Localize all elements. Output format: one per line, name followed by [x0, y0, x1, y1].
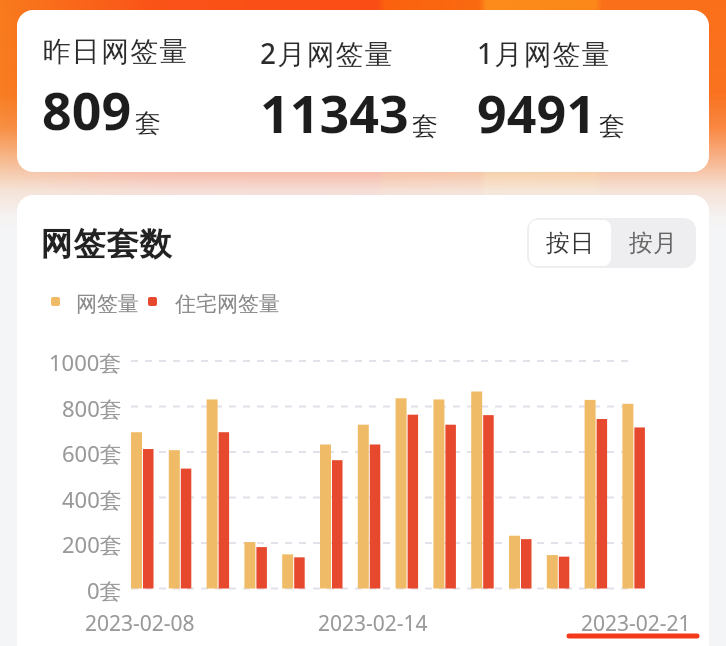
staticText: 套 — [135, 107, 161, 140]
staticText: 按日 — [546, 228, 594, 258]
staticText: 套 — [412, 110, 438, 143]
staticText: 11343 — [260, 77, 409, 148]
staticText: 按月 — [629, 228, 677, 258]
staticText: 1000套 — [49, 347, 122, 375]
staticText: 2023-02-08 — [85, 609, 195, 638]
button[interactable]: 按月 — [611, 220, 694, 266]
staticText: 1月网签量 — [477, 34, 612, 72]
staticText: 800套 — [62, 393, 122, 421]
staticText: 2月网签量 — [260, 34, 395, 72]
staticText: 809 — [42, 74, 132, 145]
staticText: 2023-02-21 — [581, 609, 691, 638]
staticText: 住宅网签量 — [175, 291, 280, 317]
button[interactable]: 按日 — [529, 220, 611, 266]
staticText: 昨日网签量 — [42, 34, 188, 69]
staticText: 2023-02-14 — [318, 609, 428, 638]
staticText: 200套 — [62, 529, 122, 557]
staticText: 0套 — [87, 575, 122, 603]
staticText: 9491 — [477, 77, 596, 148]
staticText: 套 — [599, 110, 625, 143]
staticText: 400套 — [62, 484, 122, 512]
staticText: 网签量 — [76, 291, 139, 317]
staticText: 600套 — [62, 438, 122, 466]
staticText: 网签套数 — [40, 224, 172, 264]
